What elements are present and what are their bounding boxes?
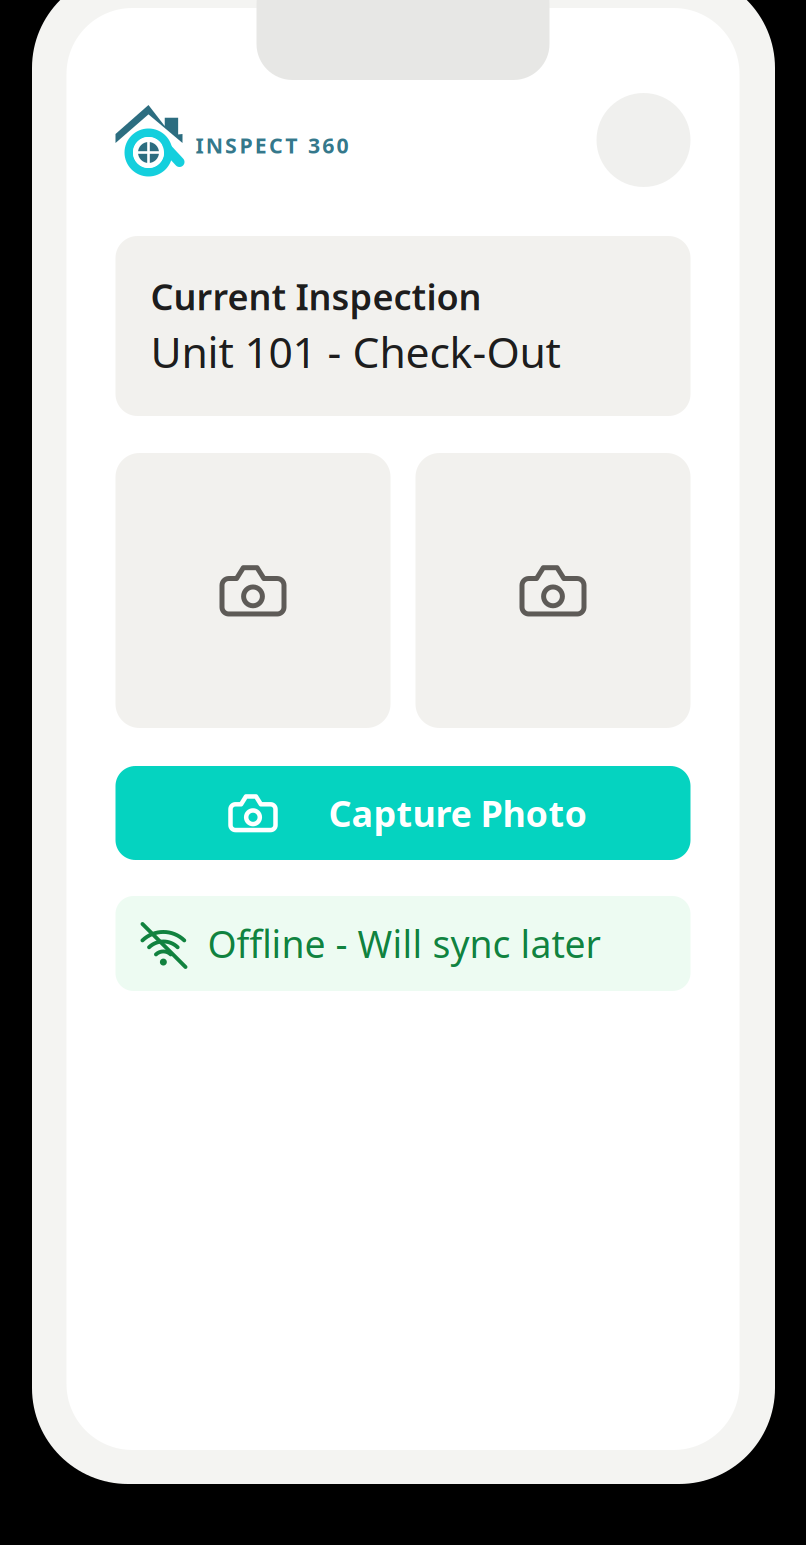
staticText: Capture Photo [328, 789, 587, 837]
button[interactable]: Add photo [115, 453, 390, 728]
staticText: Current Inspection [150, 272, 481, 320]
staticText: Unit 101 - Check-Out [150, 323, 560, 380]
button[interactable]: Capture Photo [115, 766, 690, 860]
button[interactable]: Account [596, 93, 690, 187]
button[interactable]: Add photo [415, 453, 690, 728]
staticText: Offline - Will sync later [207, 919, 600, 968]
staticText: INSPECT 360 [195, 131, 348, 159]
